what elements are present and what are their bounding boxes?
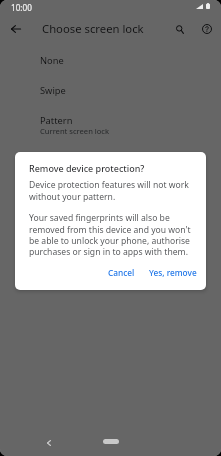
button[interactable]: Pattern bbox=[0, 105, 221, 135]
button[interactable]: Back bbox=[4, 17, 28, 41]
button[interactable]: Home bbox=[103, 439, 119, 444]
button[interactable]: Help bbox=[195, 17, 219, 41]
button[interactable]: Swipe bbox=[0, 75, 221, 103]
staticText: 10:00 bbox=[11, 2, 32, 13]
staticText: Pattern bbox=[40, 114, 73, 127]
staticText: Device protection features will not work… bbox=[29, 179, 192, 202]
button[interactable]: Back bbox=[39, 433, 58, 452]
staticText: Swipe bbox=[40, 84, 66, 97]
staticText: None bbox=[40, 54, 64, 67]
staticText: Remove device protection? bbox=[29, 162, 145, 174]
button[interactable]: Search bbox=[168, 17, 192, 41]
staticText: Choose screen lock bbox=[42, 21, 144, 36]
staticText: Current screen lock bbox=[40, 126, 110, 134]
staticText: Cancel bbox=[108, 267, 135, 278]
button[interactable]: Yes, remove bbox=[144, 263, 202, 282]
staticText: Yes, remove bbox=[149, 267, 197, 278]
button[interactable]: Cancel bbox=[103, 263, 140, 282]
staticText: Your saved fingerprints will also be rem… bbox=[29, 212, 192, 257]
button[interactable]: None bbox=[0, 45, 221, 73]
